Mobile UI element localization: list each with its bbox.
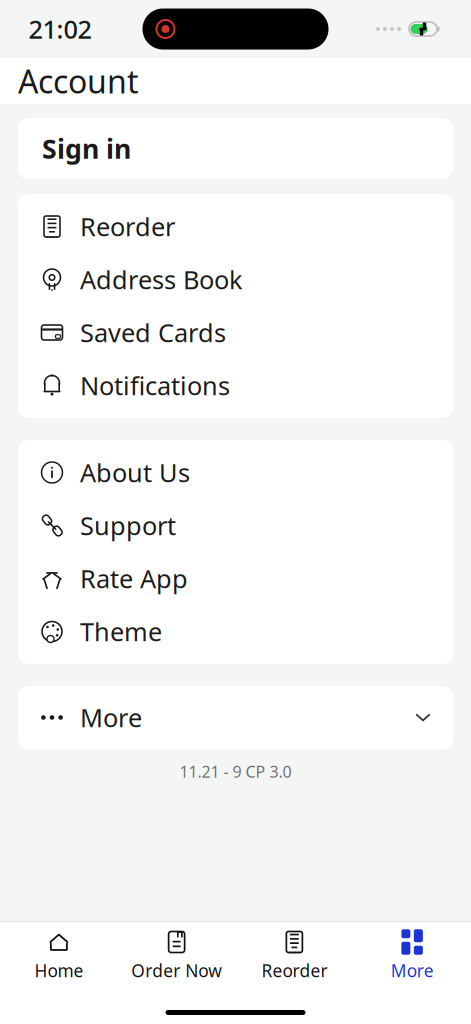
button[interactable]: Home bbox=[0, 930, 118, 982]
button[interactable]: More bbox=[353, 930, 471, 982]
staticText: Reorder bbox=[80, 210, 175, 243]
staticText: Theme bbox=[80, 615, 162, 648]
staticText: Account bbox=[18, 60, 139, 102]
button[interactable]: Reorder bbox=[18, 200, 453, 253]
staticText: Saved Cards bbox=[80, 316, 226, 349]
button[interactable]: Rate App bbox=[18, 552, 453, 605]
button[interactable]: Support bbox=[18, 499, 453, 552]
staticText: Home bbox=[34, 959, 83, 982]
staticText: Support bbox=[80, 509, 176, 542]
button[interactable]: About Us bbox=[18, 446, 453, 499]
staticText: Reorder bbox=[261, 959, 327, 982]
button[interactable]: Saved Cards bbox=[18, 306, 453, 359]
button[interactable]: Notifications bbox=[18, 359, 453, 412]
staticText: Sign in bbox=[42, 131, 131, 166]
staticText: About Us bbox=[80, 456, 190, 489]
staticText: Address Book bbox=[80, 263, 243, 296]
staticText: 21:02 bbox=[28, 12, 91, 46]
button[interactable]: Address Book bbox=[18, 253, 453, 306]
button[interactable]: Order Now bbox=[118, 930, 236, 982]
staticText: 11.21 - 9 CP 3.0 bbox=[179, 761, 291, 782]
staticText: More bbox=[80, 701, 142, 734]
staticText: More bbox=[391, 959, 434, 982]
button[interactable]: More bbox=[18, 691, 453, 744]
button[interactable]: Sign in bbox=[18, 118, 453, 179]
staticText: Notifications bbox=[80, 369, 230, 402]
staticText: Order Now bbox=[131, 959, 222, 982]
staticText: Rate App bbox=[80, 562, 188, 595]
button[interactable]: Reorder bbox=[235, 930, 353, 982]
button[interactable]: Theme bbox=[18, 605, 453, 658]
